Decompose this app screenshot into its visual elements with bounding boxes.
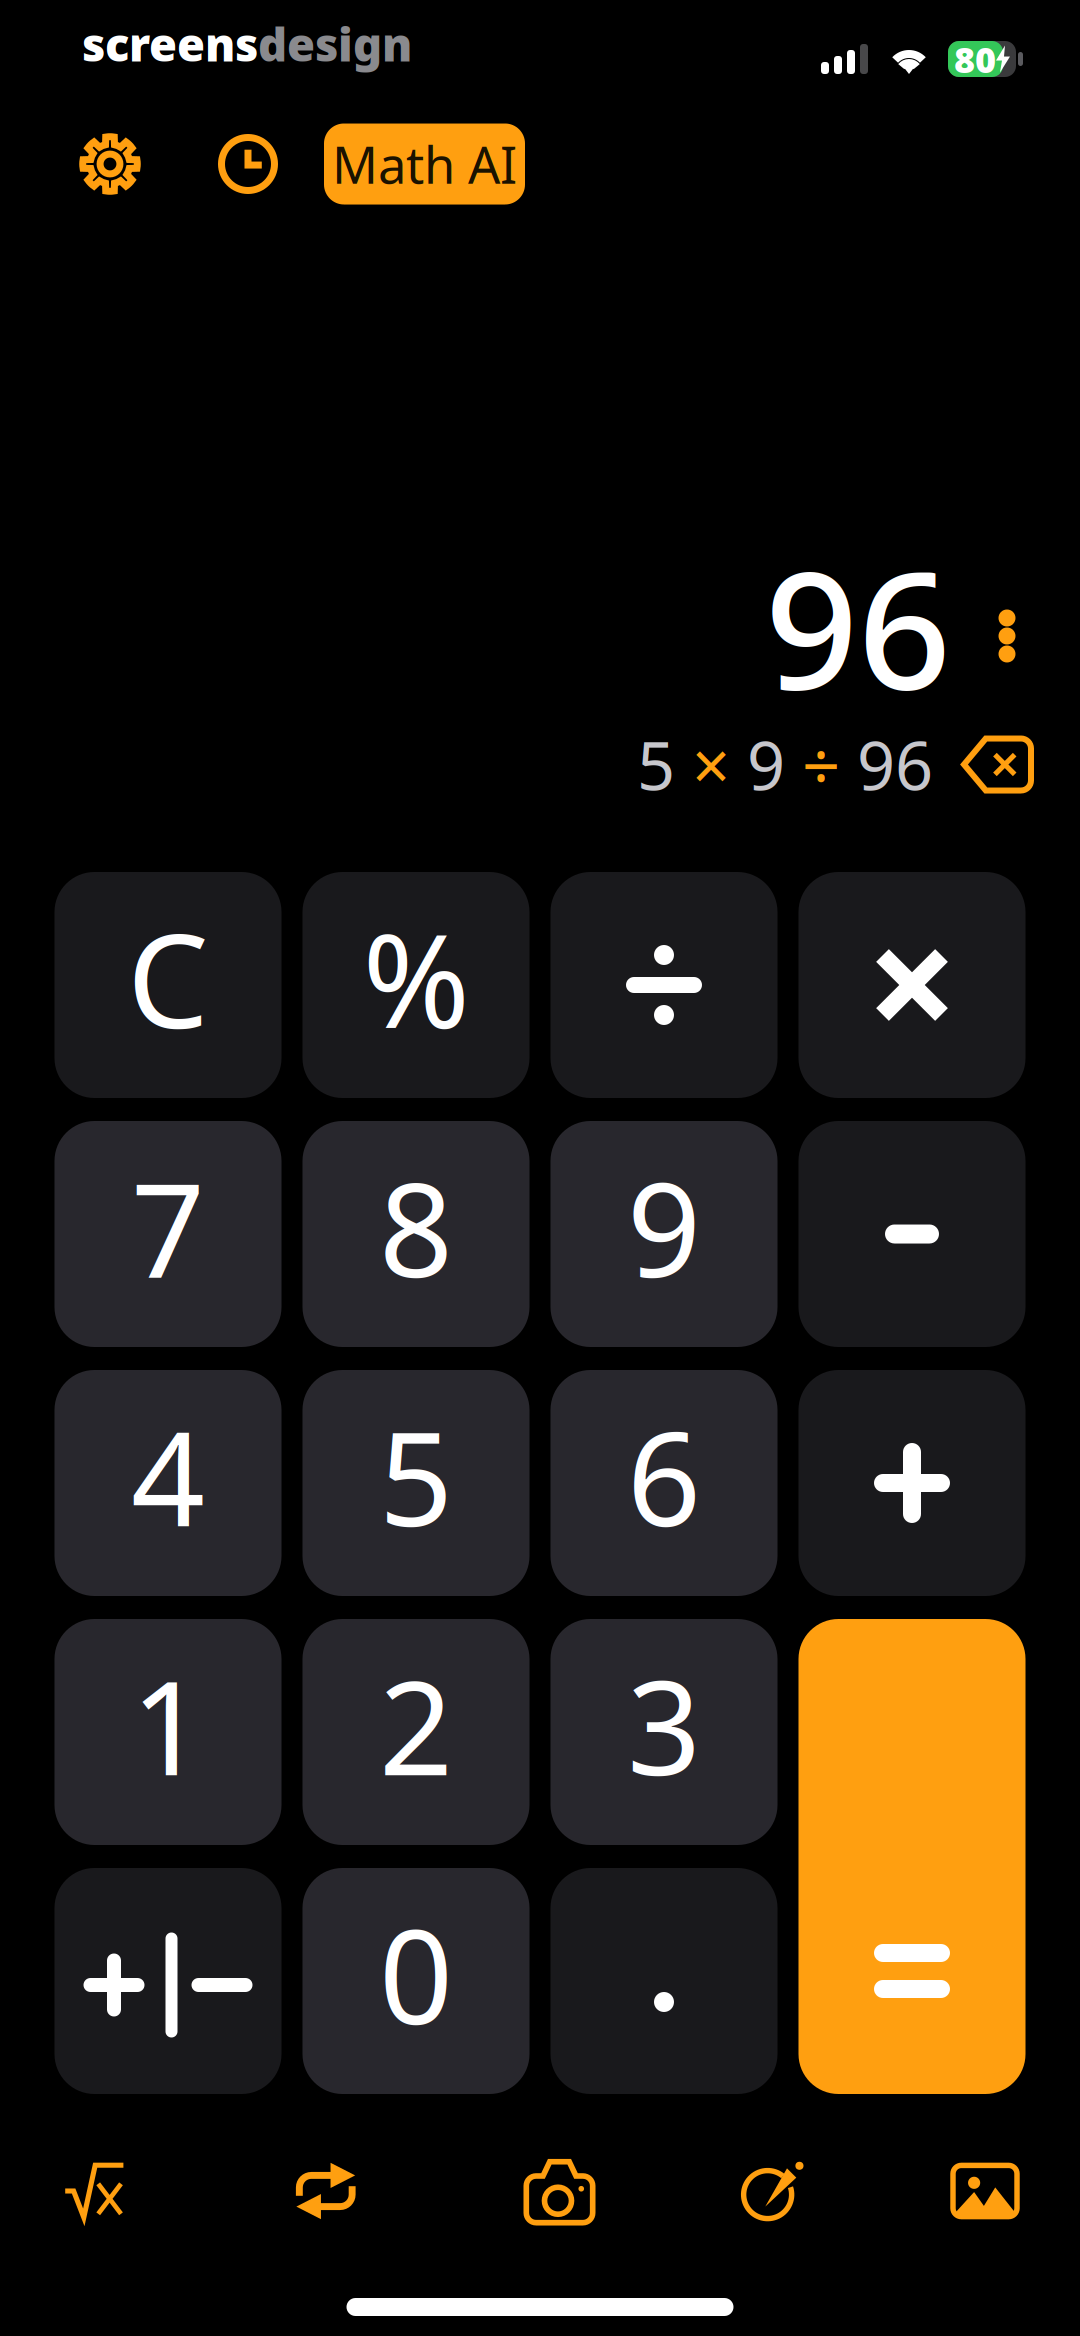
button[interactable]: Convert units: [262, 2143, 372, 2239]
button[interactable]: Divide: [550, 872, 777, 1098]
button[interactable]: 4: [54, 1370, 281, 1596]
button[interactable]: Photo library: [930, 2143, 1040, 2239]
button[interactable]: Delete: [933, 735, 1034, 793]
button[interactable]: Decimal point: [550, 1868, 777, 2094]
button[interactable]: 9: [550, 1121, 777, 1347]
button[interactable]: Math AI: [324, 123, 525, 204]
staticText: 7: [131, 1141, 205, 1313]
button[interactable]: 0: [302, 1868, 529, 2094]
button[interactable]: Settings: [67, 121, 153, 207]
button[interactable]: Plus: [798, 1370, 1025, 1596]
button[interactable]: Equals: [798, 1619, 1025, 2094]
button[interactable]: Scan with camera: [484, 2143, 594, 2239]
button[interactable]: 7: [54, 1121, 281, 1347]
staticText: 96: [765, 518, 951, 734]
button[interactable]: 3: [550, 1619, 777, 1845]
button[interactable]: History: [205, 121, 291, 207]
staticText: 80: [954, 35, 996, 83]
button[interactable]: 2: [302, 1619, 529, 1845]
staticText: 2: [379, 1639, 453, 1811]
button[interactable]: Square root: [39, 2143, 149, 2239]
staticText: 9: [747, 720, 785, 809]
staticText: screens: [82, 14, 258, 74]
staticText: 5: [637, 720, 675, 809]
button[interactable]: 8: [302, 1121, 529, 1347]
button[interactable]: Minus: [798, 1121, 1025, 1347]
button[interactable]: 6: [550, 1370, 777, 1596]
staticText: Math AI: [332, 130, 517, 198]
staticText: 3: [627, 1639, 701, 1811]
staticText: %: [362, 892, 469, 1064]
staticText: 5: [379, 1390, 453, 1562]
staticText: 0: [379, 1888, 453, 2060]
staticText: 1: [131, 1639, 205, 1811]
staticText: ×: [675, 720, 747, 809]
button[interactable]: More options: [998, 561, 1032, 691]
staticText: C: [127, 892, 209, 1064]
staticText: 4: [131, 1390, 205, 1562]
staticText: 8: [379, 1141, 453, 1313]
staticText: ÷: [785, 720, 857, 809]
staticText: 96: [857, 720, 933, 809]
button[interactable]: %: [302, 872, 529, 1098]
staticText: 6: [627, 1390, 701, 1562]
button[interactable]: 1: [54, 1619, 281, 1845]
button[interactable]: 5: [302, 1370, 529, 1596]
staticText: design: [258, 14, 412, 74]
button[interactable]: C: [54, 872, 281, 1098]
staticText: 9: [627, 1141, 701, 1313]
button[interactable]: Toggle sign: [54, 1868, 281, 2094]
button[interactable]: Multiply: [798, 872, 1025, 1098]
button[interactable]: Handwriting: [707, 2143, 817, 2239]
